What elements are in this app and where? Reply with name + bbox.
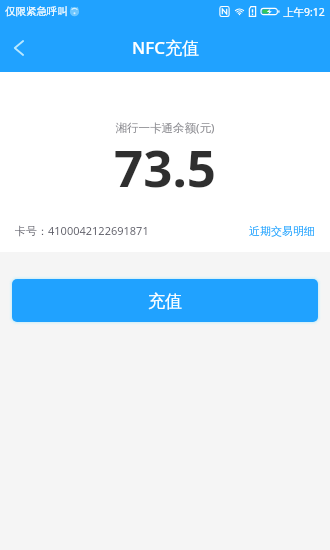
staticText: 充值: [148, 291, 182, 312]
staticText: 卡号：4100042122691871: [15, 223, 149, 238]
button[interactable]: Back: [0, 23, 37, 72]
button[interactable]: 近期交易明细: [249, 224, 315, 238]
staticText: 湘行一卡通余额(元): [0, 120, 330, 136]
staticText: 上午9:12: [283, 5, 325, 19]
button[interactable]: 充值: [12, 279, 318, 322]
staticText: 73.5: [0, 132, 330, 201]
staticText: 仅限紧急呼叫: [5, 5, 68, 18]
staticText: NFC充值: [132, 36, 199, 59]
staticText: 近期交易明细: [249, 224, 315, 238]
